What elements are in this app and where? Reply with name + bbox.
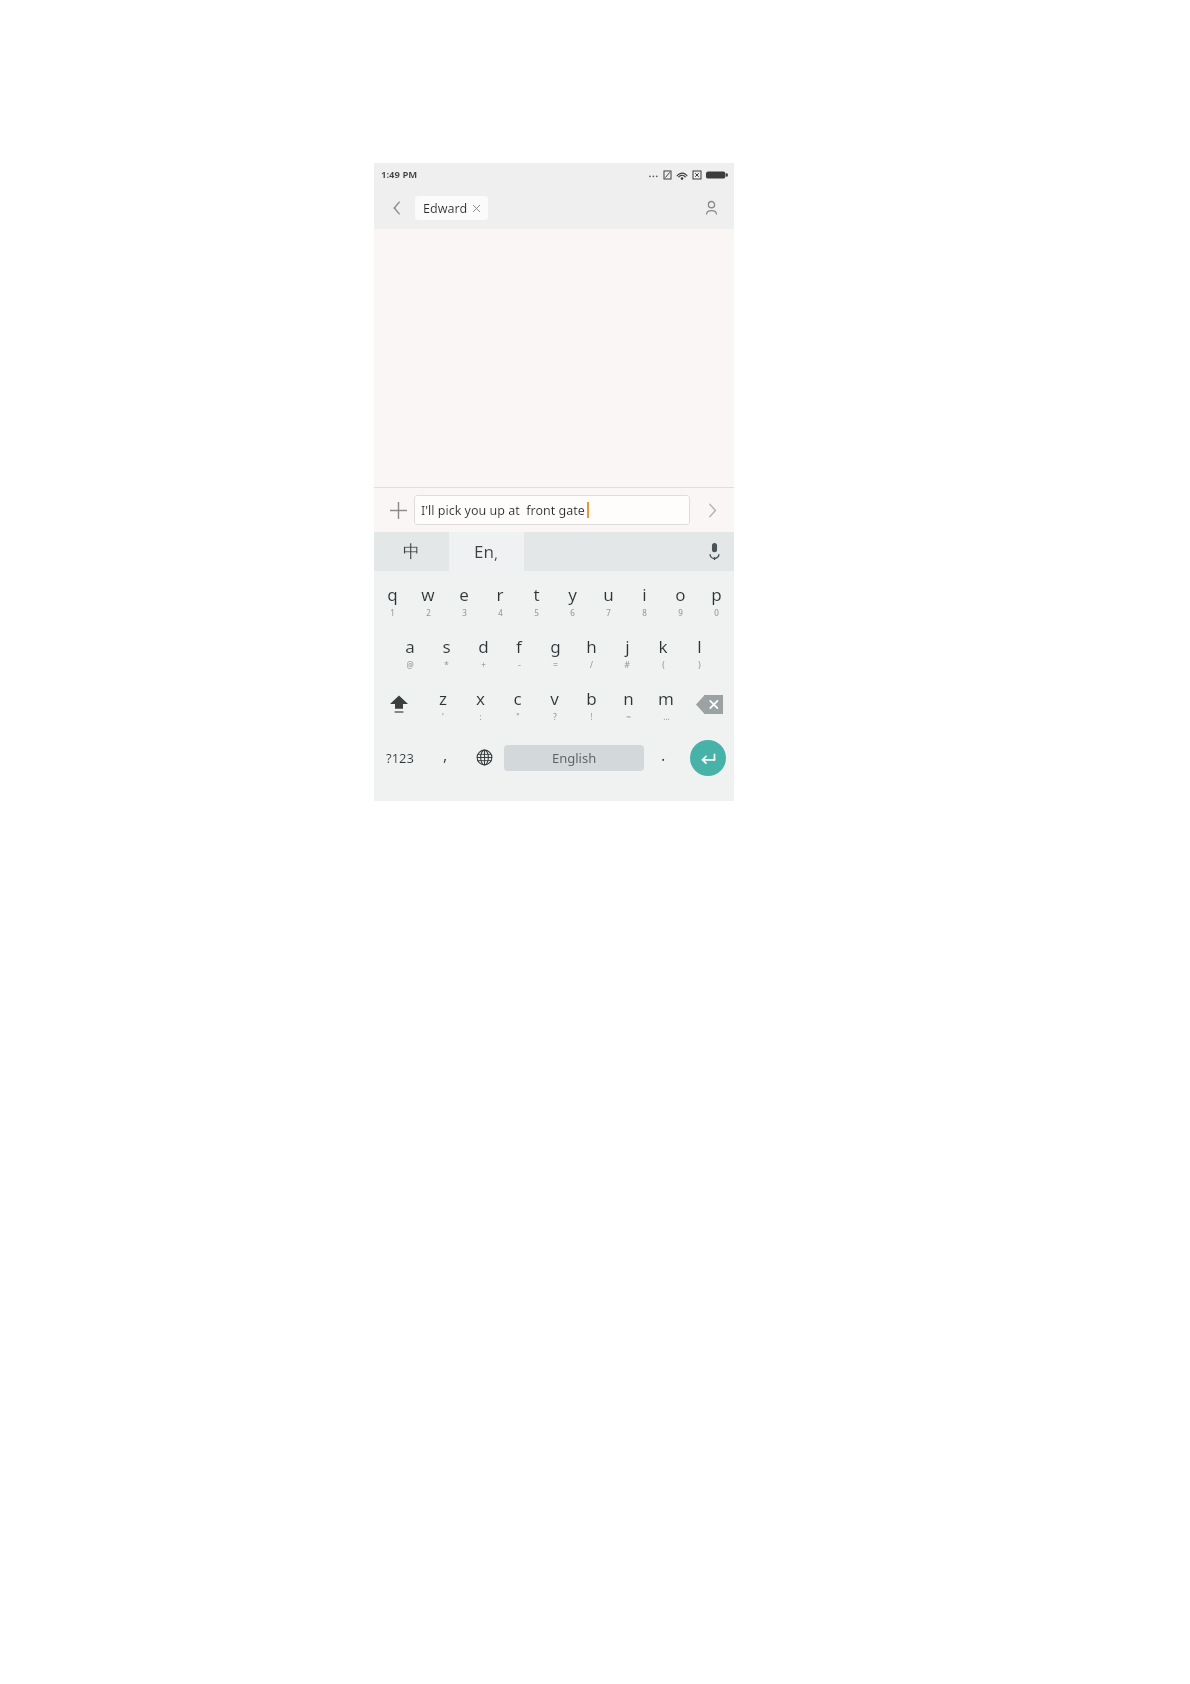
button[interactable]: s <box>428 626 465 678</box>
button[interactable]: t <box>518 574 554 626</box>
staticText: s <box>442 635 451 658</box>
button[interactable]: h <box>573 626 609 678</box>
button[interactable]: q <box>374 574 410 626</box>
staticText: * <box>444 659 449 670</box>
staticText: 1:49 PM <box>381 168 418 181</box>
button[interactable]: z <box>424 678 462 730</box>
button[interactable]: ?123 <box>374 730 426 785</box>
staticText: b <box>586 687 597 710</box>
button[interactable]: j <box>609 626 645 678</box>
staticText: ) <box>698 659 701 670</box>
button[interactable]: v <box>536 678 573 730</box>
staticText: . <box>661 744 666 766</box>
staticText: Edward <box>423 200 468 217</box>
staticText: I'll pick you up at front gate <box>421 502 585 519</box>
staticText: o <box>675 583 686 606</box>
staticText: m <box>658 687 674 710</box>
button[interactable]: g <box>537 626 573 678</box>
button[interactable]: Shift <box>374 678 424 730</box>
staticText: , <box>494 543 499 563</box>
button[interactable]: En <box>449 532 524 571</box>
button[interactable]: Contact details <box>698 195 724 221</box>
button[interactable]: o <box>662 574 698 626</box>
staticText: u <box>603 583 614 606</box>
staticText: h <box>586 635 597 658</box>
button[interactable]: u <box>590 574 626 626</box>
button[interactable]: p <box>698 574 734 626</box>
button[interactable]: e <box>446 574 482 626</box>
button[interactable]: n <box>610 678 647 730</box>
button[interactable]: a <box>391 626 428 678</box>
staticText: - <box>518 659 521 670</box>
button[interactable]: . <box>644 730 682 785</box>
staticText: c <box>513 687 522 710</box>
button[interactable]: f <box>501 626 537 678</box>
staticText: t <box>533 583 540 606</box>
staticText: En <box>474 540 494 563</box>
staticText: : <box>479 711 482 722</box>
staticText: ! <box>590 711 593 722</box>
button[interactable]: l <box>681 626 717 678</box>
button[interactable]: i <box>626 574 662 626</box>
staticText: ?123 <box>386 749 414 767</box>
button[interactable]: Back <box>384 195 410 221</box>
button[interactable]: , <box>426 730 464 785</box>
button[interactable]: b <box>573 678 610 730</box>
staticText: y <box>568 583 577 606</box>
staticText: ... <box>663 711 670 722</box>
staticText: 4 <box>498 607 503 618</box>
staticText: q <box>387 583 398 606</box>
button[interactable]: 中 <box>374 532 449 571</box>
button[interactable]: Voice input <box>694 532 734 571</box>
staticText: j <box>625 635 630 658</box>
staticText: a <box>405 635 415 658</box>
staticText: v <box>550 687 559 710</box>
staticText: 2 <box>426 607 431 618</box>
staticText: @ <box>406 659 414 670</box>
button[interactable]: m <box>647 678 684 730</box>
button[interactable]: Add attachment <box>384 496 412 524</box>
staticText: n <box>623 687 634 710</box>
staticText: r <box>496 583 504 606</box>
staticText: 8 <box>642 607 647 618</box>
button[interactable]: d <box>465 626 501 678</box>
button[interactable]: English <box>504 745 644 771</box>
staticText: i <box>642 583 647 606</box>
staticText: 9 <box>678 607 683 618</box>
staticText: 3 <box>462 607 467 618</box>
staticText: English <box>552 749 597 767</box>
staticText: 5 <box>534 607 539 618</box>
button[interactable]: k <box>645 626 681 678</box>
staticText: p <box>711 583 722 606</box>
staticText: = <box>553 659 558 670</box>
staticText: 0 <box>714 607 719 618</box>
staticText: 中 <box>403 541 420 562</box>
staticText: x <box>476 687 485 710</box>
staticText: w <box>421 583 435 606</box>
staticText: z <box>439 687 447 710</box>
button[interactable]: c <box>499 678 536 730</box>
button[interactable]: w <box>410 574 446 626</box>
staticText: ( <box>662 659 665 670</box>
staticText: e <box>459 583 469 606</box>
button[interactable]: Send <box>698 496 726 524</box>
button[interactable]: Switch language <box>464 730 504 785</box>
staticText: d <box>478 635 489 658</box>
staticText: l <box>697 635 702 658</box>
staticText: 7 <box>606 607 611 618</box>
staticText: # <box>624 659 630 670</box>
staticText: , <box>443 744 448 766</box>
button[interactable]: Backspace <box>684 678 734 730</box>
button[interactable]: I'll pick you up at front gate <box>414 495 690 525</box>
staticText: + <box>481 659 486 670</box>
button[interactable]: Enter <box>690 740 726 776</box>
button[interactable]: r <box>482 574 518 626</box>
staticText: ~ <box>626 711 631 722</box>
staticText: ? <box>553 711 557 722</box>
staticText: f <box>516 635 522 658</box>
staticText: 6 <box>570 607 575 618</box>
button[interactable]: y <box>554 574 590 626</box>
button[interactable]: x <box>462 678 499 730</box>
button[interactable]: Edward <box>415 196 488 220</box>
staticText: g <box>550 635 561 658</box>
